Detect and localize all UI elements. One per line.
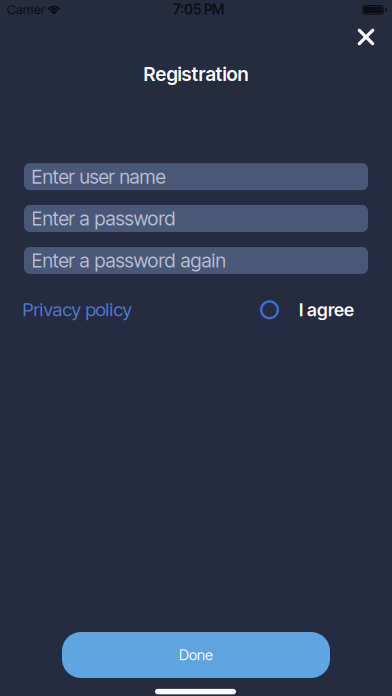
button[interactable]: Privacy policy — [22, 298, 132, 321]
staticText: Privacy policy — [22, 298, 132, 321]
button[interactable]: Enter a password — [24, 205, 368, 232]
staticText: 7:05 PM — [173, 1, 224, 18]
staticText: Enter a password again — [31, 249, 225, 272]
staticText: Carrier — [7, 1, 45, 17]
staticText: Registration — [143, 62, 248, 86]
staticText: Enter a password — [31, 207, 175, 230]
button[interactable]: Close — [348, 19, 384, 55]
button[interactable]: Done — [62, 632, 330, 678]
staticText: Done — [179, 646, 213, 664]
button[interactable]: Enter user name — [24, 163, 368, 190]
staticText: Enter user name — [31, 165, 165, 188]
button[interactable]: I agree — [260, 299, 354, 321]
button[interactable]: Enter a password again — [24, 247, 368, 274]
staticText: I agree — [299, 299, 354, 321]
